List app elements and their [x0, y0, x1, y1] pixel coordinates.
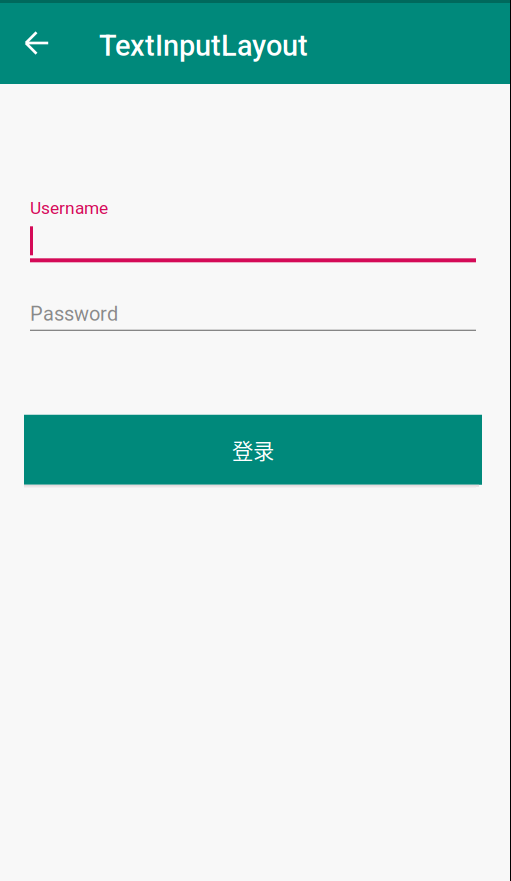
- button[interactable]: 登录: [24, 415, 482, 485]
- staticText: Username: [30, 198, 108, 218]
- staticText: Password: [30, 302, 118, 326]
- button[interactable]: Password: [24, 302, 476, 331]
- staticText: TextInputLayout: [99, 29, 308, 63]
- staticText: 登录: [232, 434, 274, 465]
- button[interactable]: Username: [24, 198, 476, 262]
- button[interactable]: Back: [0, 3, 61, 67]
